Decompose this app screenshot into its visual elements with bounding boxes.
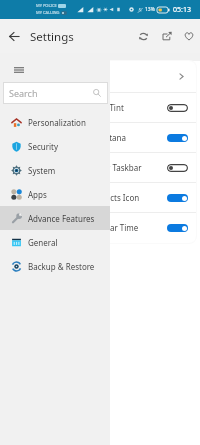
button[interactable]: System: [0, 158, 110, 182]
staticText: 13%: [145, 6, 155, 13]
button[interactable]: On: [167, 224, 188, 232]
staticText: MY CALLING: [36, 10, 60, 15]
button[interactable]: Screen Tint: [4, 93, 196, 122]
staticText: Calendar Time: [84, 222, 139, 233]
staticText: Contacts Icon: [88, 192, 140, 203]
button[interactable]: Personalization: [0, 110, 110, 134]
button[interactable]: Menu: [9, 60, 28, 79]
button[interactable]: On: [167, 194, 188, 202]
staticText: Apps: [28, 189, 47, 200]
button[interactable]: Show Taskbar: [4, 153, 196, 182]
button[interactable]: Off: [167, 104, 188, 112]
button[interactable]: On: [167, 134, 188, 142]
button[interactable]: Search: [3, 82, 108, 104]
button[interactable]: Refresh: [132, 19, 155, 53]
staticText: Search: [9, 87, 38, 99]
button[interactable]: Cortana: [4, 123, 196, 152]
staticText: Show Taskbar: [90, 162, 142, 173]
button[interactable]: Calendar Time: [4, 213, 196, 242]
staticText: Security: [28, 141, 59, 152]
staticText: Advance Features: [28, 213, 95, 224]
button[interactable]: Off: [167, 164, 188, 172]
staticText: MY POLICE: [36, 3, 57, 8]
staticText: Cortana: [96, 132, 127, 143]
button[interactable]: Back: [0, 19, 29, 53]
other: More: [177, 72, 186, 81]
button[interactable]: Share: [155, 19, 178, 53]
staticText: General: [28, 237, 58, 248]
button[interactable]: Apps: [0, 182, 110, 206]
button[interactable]: More: [4, 61, 196, 92]
button[interactable]: Security: [0, 134, 110, 158]
button[interactable]: Advance Features: [0, 206, 110, 230]
staticText: 05:13: [173, 5, 191, 15]
button[interactable]: Contacts Icon: [4, 183, 196, 212]
button[interactable]: General: [0, 230, 110, 254]
button[interactable]: Favorite: [178, 19, 200, 53]
staticText: System: [28, 165, 56, 176]
staticText: Personalization: [28, 117, 86, 128]
staticText: Settings: [30, 29, 74, 45]
button[interactable]: Backup & Restore: [0, 254, 110, 278]
staticText: Screen Tint: [82, 102, 124, 113]
staticText: Backup & Restore: [28, 261, 95, 272]
